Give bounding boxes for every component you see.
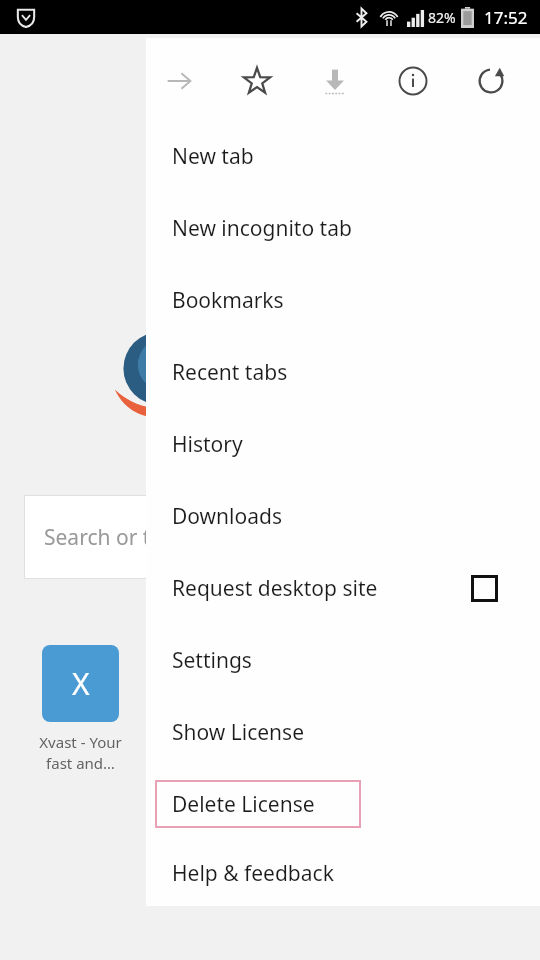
button[interactable]: Search or type URL: [24, 495, 324, 579]
staticText: Bookmarks: [172, 286, 284, 315]
staticText: Show License: [172, 718, 304, 747]
staticText: Recent tabs: [172, 358, 288, 387]
staticText: New tab: [172, 142, 254, 171]
button[interactable]: Recent tabs: [146, 336, 540, 408]
button[interactable]: Show License: [146, 696, 540, 768]
button[interactable]: Bookmark: [236, 60, 278, 102]
button[interactable]: Delete License: [146, 768, 540, 840]
staticText: Xvast - Your fast and…: [39, 732, 122, 774]
button[interactable]: Download: [314, 60, 356, 102]
button[interactable]: Page info: [392, 60, 434, 102]
button[interactable]: Downloads: [146, 480, 540, 552]
button[interactable]: Request desktop site: [146, 552, 540, 624]
staticText: Settings: [172, 646, 252, 675]
staticText: Request desktop site: [172, 574, 378, 603]
staticText: Search or type URL: [44, 523, 231, 552]
button[interactable]: Forward: [158, 60, 200, 102]
button[interactable]: History: [146, 408, 540, 480]
staticText: 17:52: [484, 6, 528, 29]
staticText: History: [172, 430, 243, 459]
button[interactable]: Help & feedback: [146, 840, 540, 906]
button[interactable]: Settings: [146, 624, 540, 696]
button[interactable]: Reload: [470, 60, 512, 102]
button[interactable]: Bookmarks: [146, 264, 540, 336]
button[interactable]: New tab: [146, 120, 540, 192]
staticText: Help & feedback: [172, 859, 334, 888]
button[interactable]: X: [20, 645, 140, 774]
staticText: X: [72, 663, 90, 704]
button[interactable]: New incognito tab: [146, 192, 540, 264]
staticText: New incognito tab: [172, 214, 352, 243]
staticText: Delete License: [172, 790, 315, 819]
staticText: 82%: [428, 8, 456, 27]
staticText: Downloads: [172, 502, 282, 531]
